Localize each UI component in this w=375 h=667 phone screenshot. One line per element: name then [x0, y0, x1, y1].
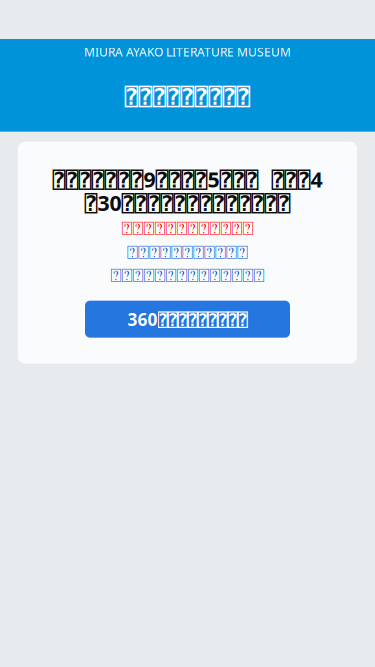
staticText: 360⍰⍰⍰⍰⍰⍰⍰⍰⍰ [127, 308, 247, 331]
staticText: ⍰⍰⍰⍰⍰⍰⍰⍰⍰⍰⍰⍰ [121, 220, 253, 238]
button[interactable]: 360⍰⍰⍰⍰⍰⍰⍰⍰⍰ [85, 301, 290, 338]
staticText: ⍰⍰⍰⍰⍰⍰⍰⍰⍰⍰⍰⍰⍰⍰ [110, 267, 264, 285]
staticText: ⍰⍰⍰⍰⍰⍰⍰9⍰⍰⍰⍰5⍰⍰⍰ ⍰⍰⍰4 [52, 165, 322, 193]
staticText: ⍰⍰⍰⍰⍰⍰⍰⍰⍰ [124, 84, 250, 110]
staticText: ⍰30⍰⍰⍰⍰⍰⍰⍰⍰⍰⍰⍰⍰⍰ [84, 188, 290, 217]
staticText: ⍰⍰⍰⍰⍰⍰⍰⍰⍰⍰⍰ [127, 244, 248, 262]
staticText: MIURA AYAKO LITERATURE MUSEUM [84, 44, 291, 60]
